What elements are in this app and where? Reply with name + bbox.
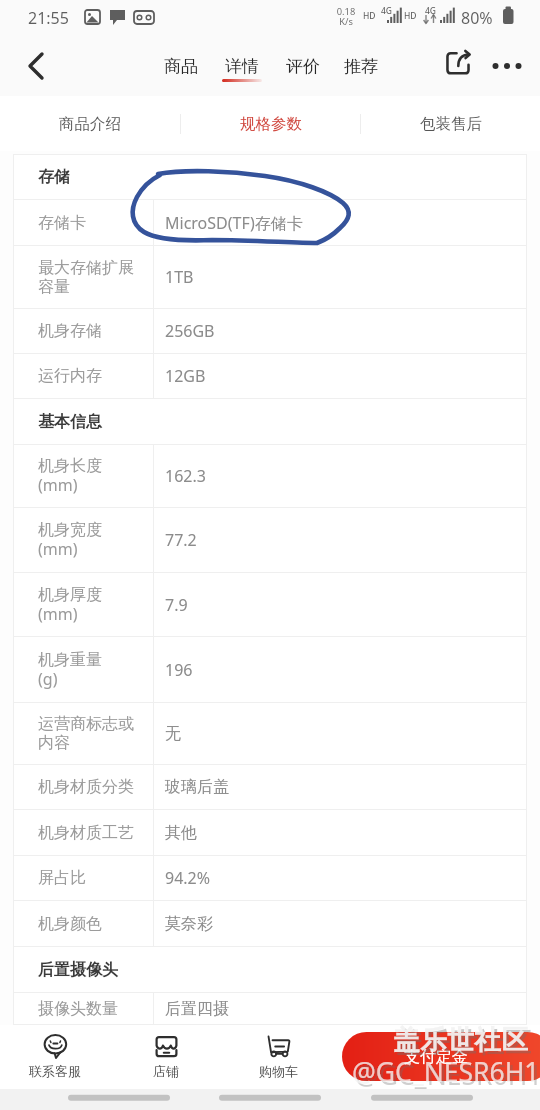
staticText: 存储 — [38, 167, 70, 187]
staticText: 屏占比 — [38, 868, 86, 888]
button[interactable]: 评价 — [274, 36, 332, 96]
staticText: MicroSD(TF)存储卡 — [165, 212, 303, 234]
staticText: 店铺 — [153, 1063, 179, 1079]
staticText: 12GB — [165, 365, 206, 387]
staticText: 256GB — [165, 320, 215, 342]
staticText: 后置四摄 — [165, 999, 229, 1019]
button[interactable]: 联系客服 — [15, 1025, 95, 1089]
staticText: 莫奈彩 — [165, 914, 213, 934]
staticText: 推荐 — [344, 56, 378, 77]
staticText: 存储卡 — [38, 213, 86, 233]
staticText: 运营商标志或 内容 — [38, 714, 134, 753]
staticText: 机身重量 (g) — [38, 650, 102, 690]
staticText: 4G — [381, 5, 393, 17]
button[interactable]: Share — [440, 46, 486, 92]
staticText: 规格参数 — [240, 114, 302, 134]
staticText: HD — [363, 10, 376, 22]
button[interactable]: 详情 — [210, 36, 274, 96]
staticText: 机身厚度 (mm) — [38, 585, 102, 625]
staticText: 详情 — [225, 56, 259, 77]
staticText: 4G — [425, 5, 437, 17]
staticText: 盖乐世社区 — [393, 1023, 528, 1056]
staticText: 玻璃后盖 — [165, 777, 229, 797]
button[interactable]: 商品介绍 — [0, 96, 180, 151]
staticText: 机身材质工艺 — [38, 823, 134, 843]
button[interactable]: 推荐 — [332, 36, 390, 96]
button[interactable]: 支付定金 — [342, 1032, 540, 1081]
staticText: 购物车 — [259, 1063, 298, 1079]
staticText: @GC_NESR6H1 — [355, 1057, 540, 1093]
staticText: 机身材质分类 — [38, 777, 134, 797]
staticText: 94.2% — [165, 867, 211, 889]
button[interactable]: 店铺 — [126, 1025, 206, 1089]
button[interactable]: 商品 — [152, 36, 210, 96]
staticText: 其他 — [165, 823, 197, 843]
staticText: 商品 — [164, 56, 198, 77]
staticText: 0.18 — [332, 5, 360, 18]
staticText: 无 — [165, 724, 181, 744]
staticText: 机身颜色 — [38, 914, 102, 934]
staticText: 联系客服 — [29, 1063, 81, 1079]
staticText: 1TB — [165, 266, 194, 288]
staticText: 基本信息 — [38, 412, 102, 432]
staticText: 机身长度 (mm) — [38, 456, 102, 496]
staticText: 196 — [165, 659, 193, 681]
staticText: 支付定金 — [404, 1047, 468, 1067]
staticText: 商品介绍 — [59, 114, 121, 134]
staticText: @GC_NESR6H1 — [352, 1054, 540, 1090]
staticText: 盖乐世社区 — [396, 1026, 531, 1059]
staticText: K/s — [332, 15, 360, 28]
staticText: 机身存储 — [38, 321, 102, 341]
staticText: 运行内存 — [38, 366, 102, 386]
staticText: 评价 — [286, 56, 320, 77]
staticText: 80% — [461, 7, 493, 29]
button[interactable]: 购物车 — [238, 1025, 318, 1089]
staticText: 162.3 — [165, 465, 206, 487]
staticText: 机身宽度 (mm) — [38, 520, 102, 560]
staticText: 包装售后 — [420, 114, 482, 134]
button[interactable]: Back — [8, 38, 64, 94]
button[interactable]: 规格参数 — [181, 96, 360, 151]
staticText: 77.2 — [165, 529, 197, 551]
staticText: HD — [404, 10, 417, 22]
staticText: 7.9 — [165, 594, 188, 616]
staticText: 最大存储扩展 容量 — [38, 258, 134, 297]
button[interactable]: 包装售后 — [361, 96, 540, 151]
staticText: 21:55 — [28, 7, 69, 29]
staticText: 摄像头数量 — [38, 999, 118, 1019]
button[interactable]: More options — [484, 43, 530, 89]
staticText: 后置摄像头 — [38, 960, 118, 980]
